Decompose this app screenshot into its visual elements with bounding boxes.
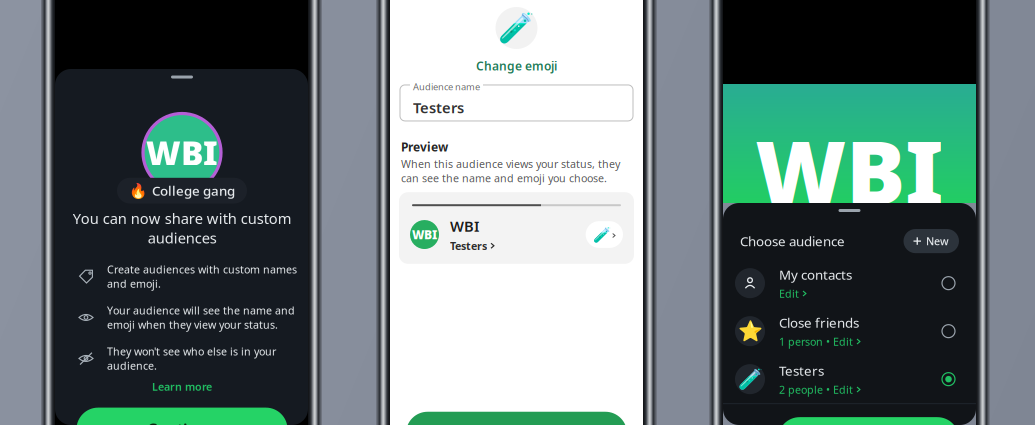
staticText: College gang xyxy=(152,182,235,199)
staticText: 1 person • Edit xyxy=(779,334,853,349)
staticText: WBI xyxy=(450,216,479,236)
staticText: New xyxy=(926,234,949,248)
staticText: Create audiences with custom names and e… xyxy=(107,262,297,291)
staticText: Preview xyxy=(401,139,448,155)
button[interactable]: 🧪 xyxy=(723,355,976,403)
staticText: Choose audience xyxy=(740,232,845,250)
staticText: You can now share with custom audiences xyxy=(72,208,291,247)
staticText: WBI xyxy=(755,112,944,229)
staticText: 🧪 xyxy=(593,226,611,243)
staticText: WBI xyxy=(412,227,437,242)
staticText: 2 people • Edit xyxy=(779,382,853,397)
staticText: They won't see who else is in your audie… xyxy=(107,344,276,373)
staticText: Edit xyxy=(779,286,799,301)
button[interactable]: My contacts xyxy=(723,259,976,307)
staticText: Testers xyxy=(779,362,824,379)
staticText: My contacts xyxy=(779,266,852,283)
button[interactable]: Save xyxy=(406,412,627,425)
staticText: Testers xyxy=(413,98,464,117)
staticText: When this audience views your status, th… xyxy=(401,157,620,185)
staticText: 🧪 xyxy=(737,368,762,391)
staticText: Audience name xyxy=(413,80,480,93)
staticText: Your audience will see the name and emoj… xyxy=(107,303,295,332)
staticText: Continue xyxy=(147,419,217,425)
staticText: 🔥 xyxy=(129,182,147,199)
button[interactable]: 🧪 xyxy=(586,221,623,248)
staticText: Change emoji xyxy=(476,58,557,74)
button[interactable]: New xyxy=(903,229,959,253)
button[interactable]: Continue xyxy=(76,408,287,425)
staticText: Learn more xyxy=(152,379,212,394)
button[interactable]: Learn more xyxy=(55,375,308,398)
staticText: Testers xyxy=(450,239,487,253)
button[interactable]: ⭐ xyxy=(723,307,976,355)
staticText: WBI xyxy=(146,130,218,175)
staticText: ⭐ xyxy=(737,320,762,343)
staticText: 🧪 xyxy=(498,11,535,45)
staticText: Close friends xyxy=(779,314,859,331)
button[interactable]: 🧪 xyxy=(476,7,557,74)
button[interactable]: Done xyxy=(778,417,959,425)
